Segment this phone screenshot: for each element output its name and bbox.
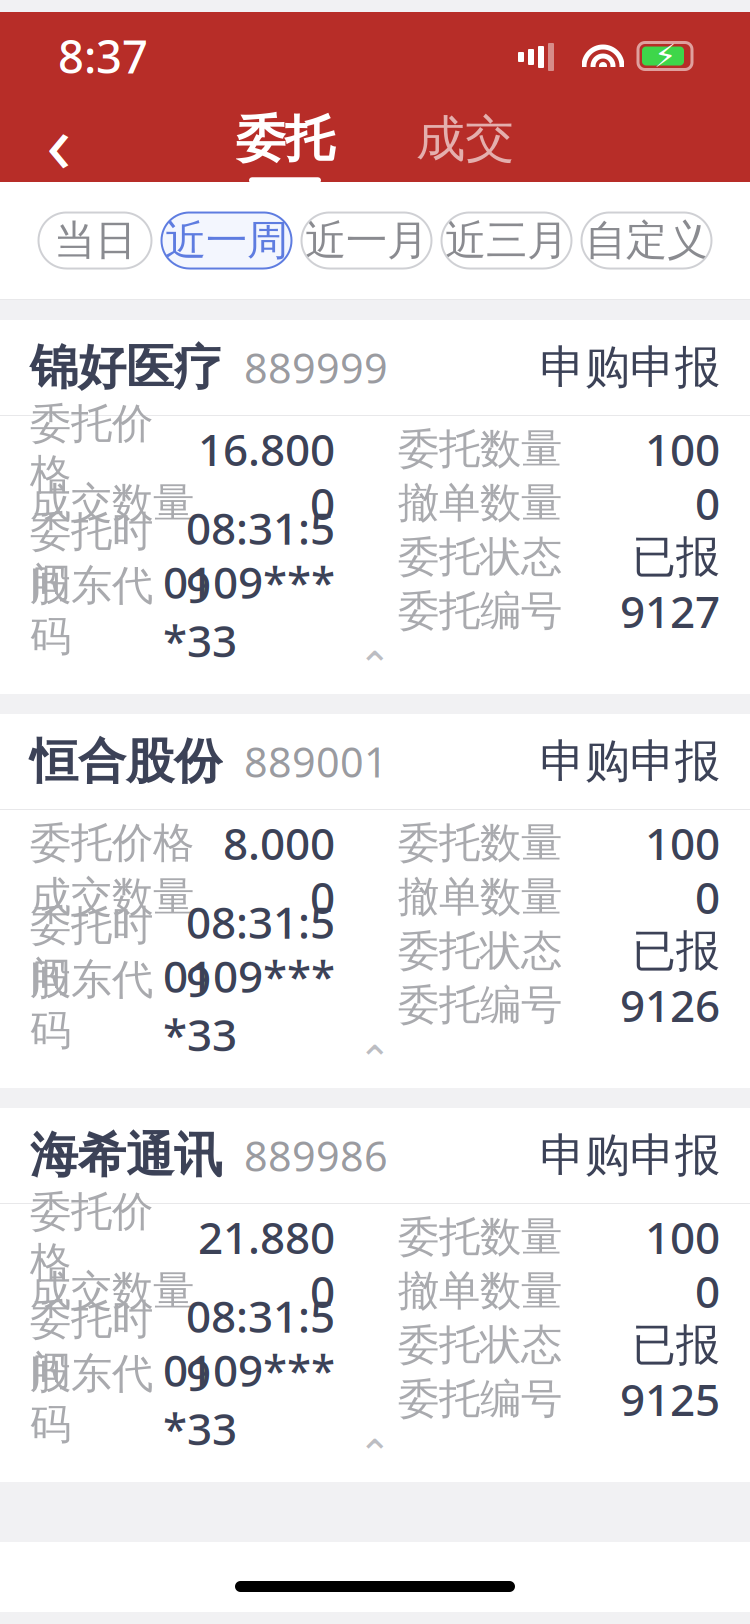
staticText: 委托时间	[30, 1294, 153, 1396]
button[interactable]: 近一月	[301, 212, 431, 268]
staticText: 9126	[620, 976, 720, 1034]
staticText: 委托价格	[30, 1186, 153, 1288]
button[interactable]: 海希通讯	[0, 1108, 750, 1203]
staticText: 0109****33	[163, 553, 335, 669]
staticText: 889001	[222, 734, 388, 789]
staticText: 近一月	[305, 215, 428, 266]
staticText: 恒合股份	[30, 732, 222, 791]
staticText: 16.800	[198, 420, 335, 478]
staticText: 委托价格	[30, 818, 194, 868]
staticText: 889999	[222, 340, 388, 395]
staticText: 21.880	[198, 1208, 335, 1266]
staticText: ⚡︎	[654, 38, 676, 74]
staticText: 0109****33	[163, 947, 335, 1063]
staticText: 申购申报	[540, 1128, 720, 1183]
staticText: 已报	[632, 924, 720, 978]
staticText: 0	[310, 1262, 335, 1320]
staticText: 8:37	[58, 26, 148, 86]
staticText: 委托编号	[398, 586, 562, 636]
staticText: 委托价格	[30, 398, 153, 500]
staticText: 0	[695, 868, 720, 926]
staticText: 锦好医疗	[30, 338, 222, 397]
staticText: 08:31:59	[186, 893, 335, 1009]
button[interactable]: 近一周	[161, 212, 291, 268]
staticText: 9125	[620, 1370, 720, 1428]
button[interactable]: 近三月	[441, 212, 571, 268]
staticText: 委托时间	[30, 506, 153, 608]
staticText: 委托状态	[398, 1320, 562, 1370]
staticText: 0	[695, 1262, 720, 1320]
staticText: 889986	[222, 1128, 388, 1183]
staticText: 成交数量	[30, 872, 194, 922]
button[interactable]: 恒合股份	[0, 714, 750, 809]
staticText: 08:31:59	[186, 1287, 335, 1403]
staticText: ⌃	[358, 1431, 392, 1477]
staticText: 委托数量	[398, 424, 562, 474]
staticText: 委托数量	[398, 818, 562, 868]
staticText: 0	[310, 868, 335, 926]
button[interactable]: 收起	[0, 1426, 750, 1482]
staticText: ‹	[46, 86, 72, 196]
button[interactable]: 委托	[225, 109, 345, 183]
staticText: 已报	[632, 1318, 720, 1372]
button[interactable]: 当日	[38, 212, 151, 268]
staticText: 委托编号	[398, 1374, 562, 1424]
staticText: 8.000	[223, 814, 335, 872]
staticText: 委托状态	[398, 532, 562, 582]
staticText: 0	[695, 474, 720, 532]
staticText: 股东代码	[30, 954, 153, 1056]
staticText: 100	[645, 420, 720, 478]
staticText: 海希通讯	[30, 1126, 222, 1185]
staticText: 撤单数量	[398, 872, 562, 922]
button[interactable]: 成交	[405, 109, 525, 183]
staticText: 成交	[416, 109, 514, 169]
staticText: 0	[310, 474, 335, 532]
staticText: 成交数量	[30, 1266, 194, 1316]
staticText: 申购申报	[540, 734, 720, 789]
staticText: 近三月	[445, 215, 568, 266]
staticText: 撤单数量	[398, 1266, 562, 1316]
button[interactable]: 锦好医疗	[0, 320, 750, 415]
button[interactable]: 返回	[24, 101, 94, 181]
staticText: 已报	[632, 530, 720, 584]
staticText: ⌃	[358, 643, 392, 689]
staticText: 08:31:59	[186, 499, 335, 615]
staticText: 委托数量	[398, 1212, 562, 1262]
staticText: 委托时间	[30, 900, 153, 1002]
staticText: 100	[645, 1208, 720, 1266]
button[interactable]: 收起	[0, 638, 750, 694]
staticText: 100	[645, 814, 720, 872]
staticText: 自定义	[585, 215, 708, 266]
staticText: 委托	[236, 109, 334, 169]
staticText: 股东代码	[30, 560, 153, 662]
button[interactable]: 收起	[0, 1032, 750, 1088]
staticText: 0109****33	[163, 1341, 335, 1457]
staticText: 9127	[620, 582, 720, 640]
staticText: 撤单数量	[398, 478, 562, 528]
staticText: 委托编号	[398, 980, 562, 1030]
staticText: 委托状态	[398, 926, 562, 976]
staticText: 成交数量	[30, 478, 194, 528]
staticText: 股东代码	[30, 1348, 153, 1450]
staticText: 当日	[54, 215, 136, 266]
staticText: ⌃	[358, 1037, 392, 1083]
button[interactable]: 自定义	[581, 212, 711, 268]
staticText: 近一周	[165, 215, 288, 266]
staticText: 申购申报	[540, 340, 720, 395]
